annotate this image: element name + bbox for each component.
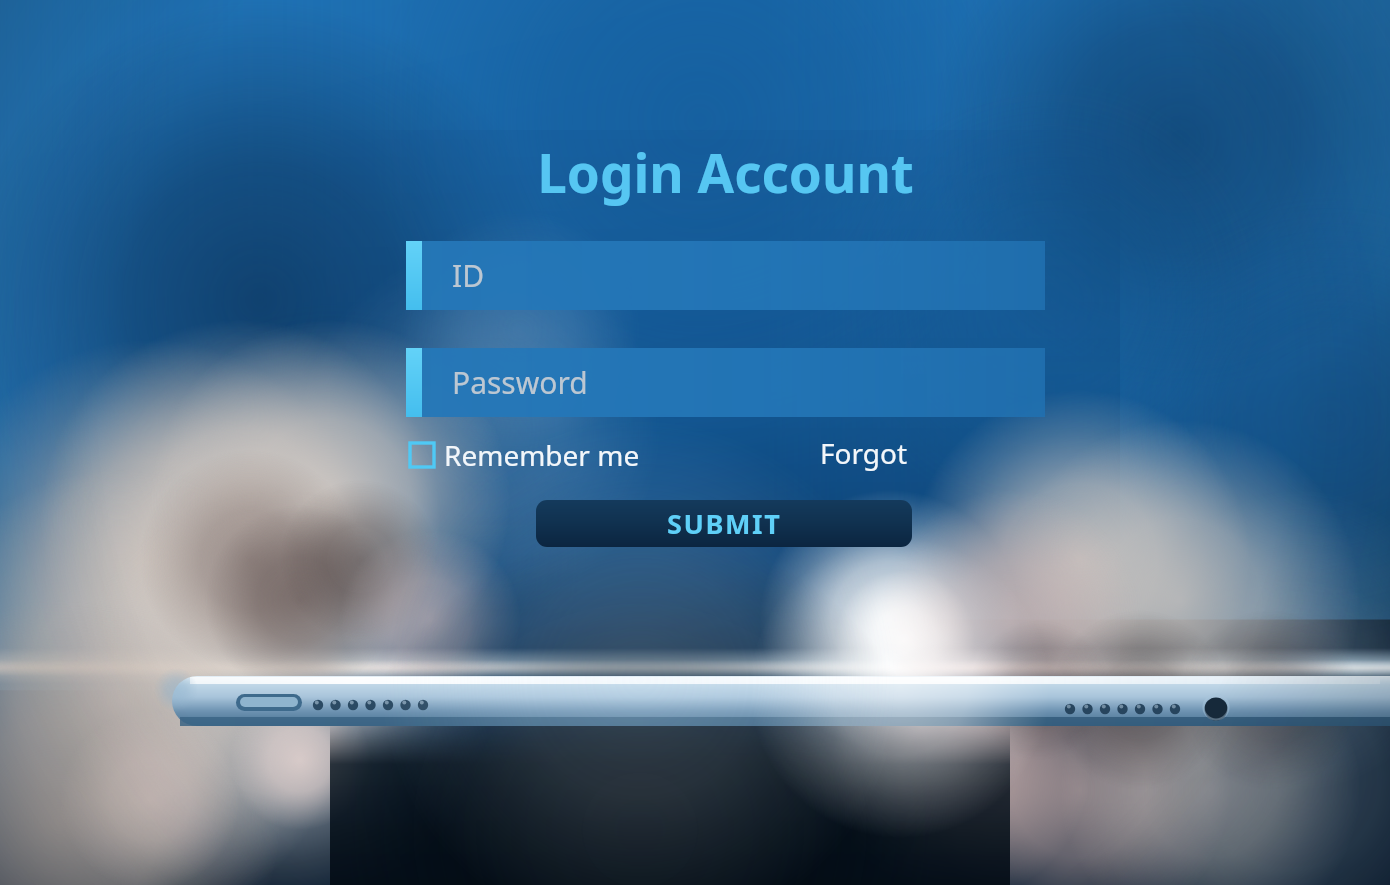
staticText: SUBMIT [667, 505, 782, 542]
button[interactable]: Remember me [404, 434, 632, 476]
staticText: Login Account [537, 136, 914, 206]
staticText: Remember me [444, 436, 640, 474]
staticText: Password [452, 362, 588, 403]
button[interactable]: ID [406, 241, 1045, 310]
button[interactable]: SUBMIT [536, 500, 912, 547]
button[interactable]: Password [406, 348, 1045, 417]
staticText: ID [452, 255, 485, 296]
staticText: Forgot Password? [820, 434, 1046, 476]
button[interactable]: Forgot Password? [820, 434, 1046, 476]
